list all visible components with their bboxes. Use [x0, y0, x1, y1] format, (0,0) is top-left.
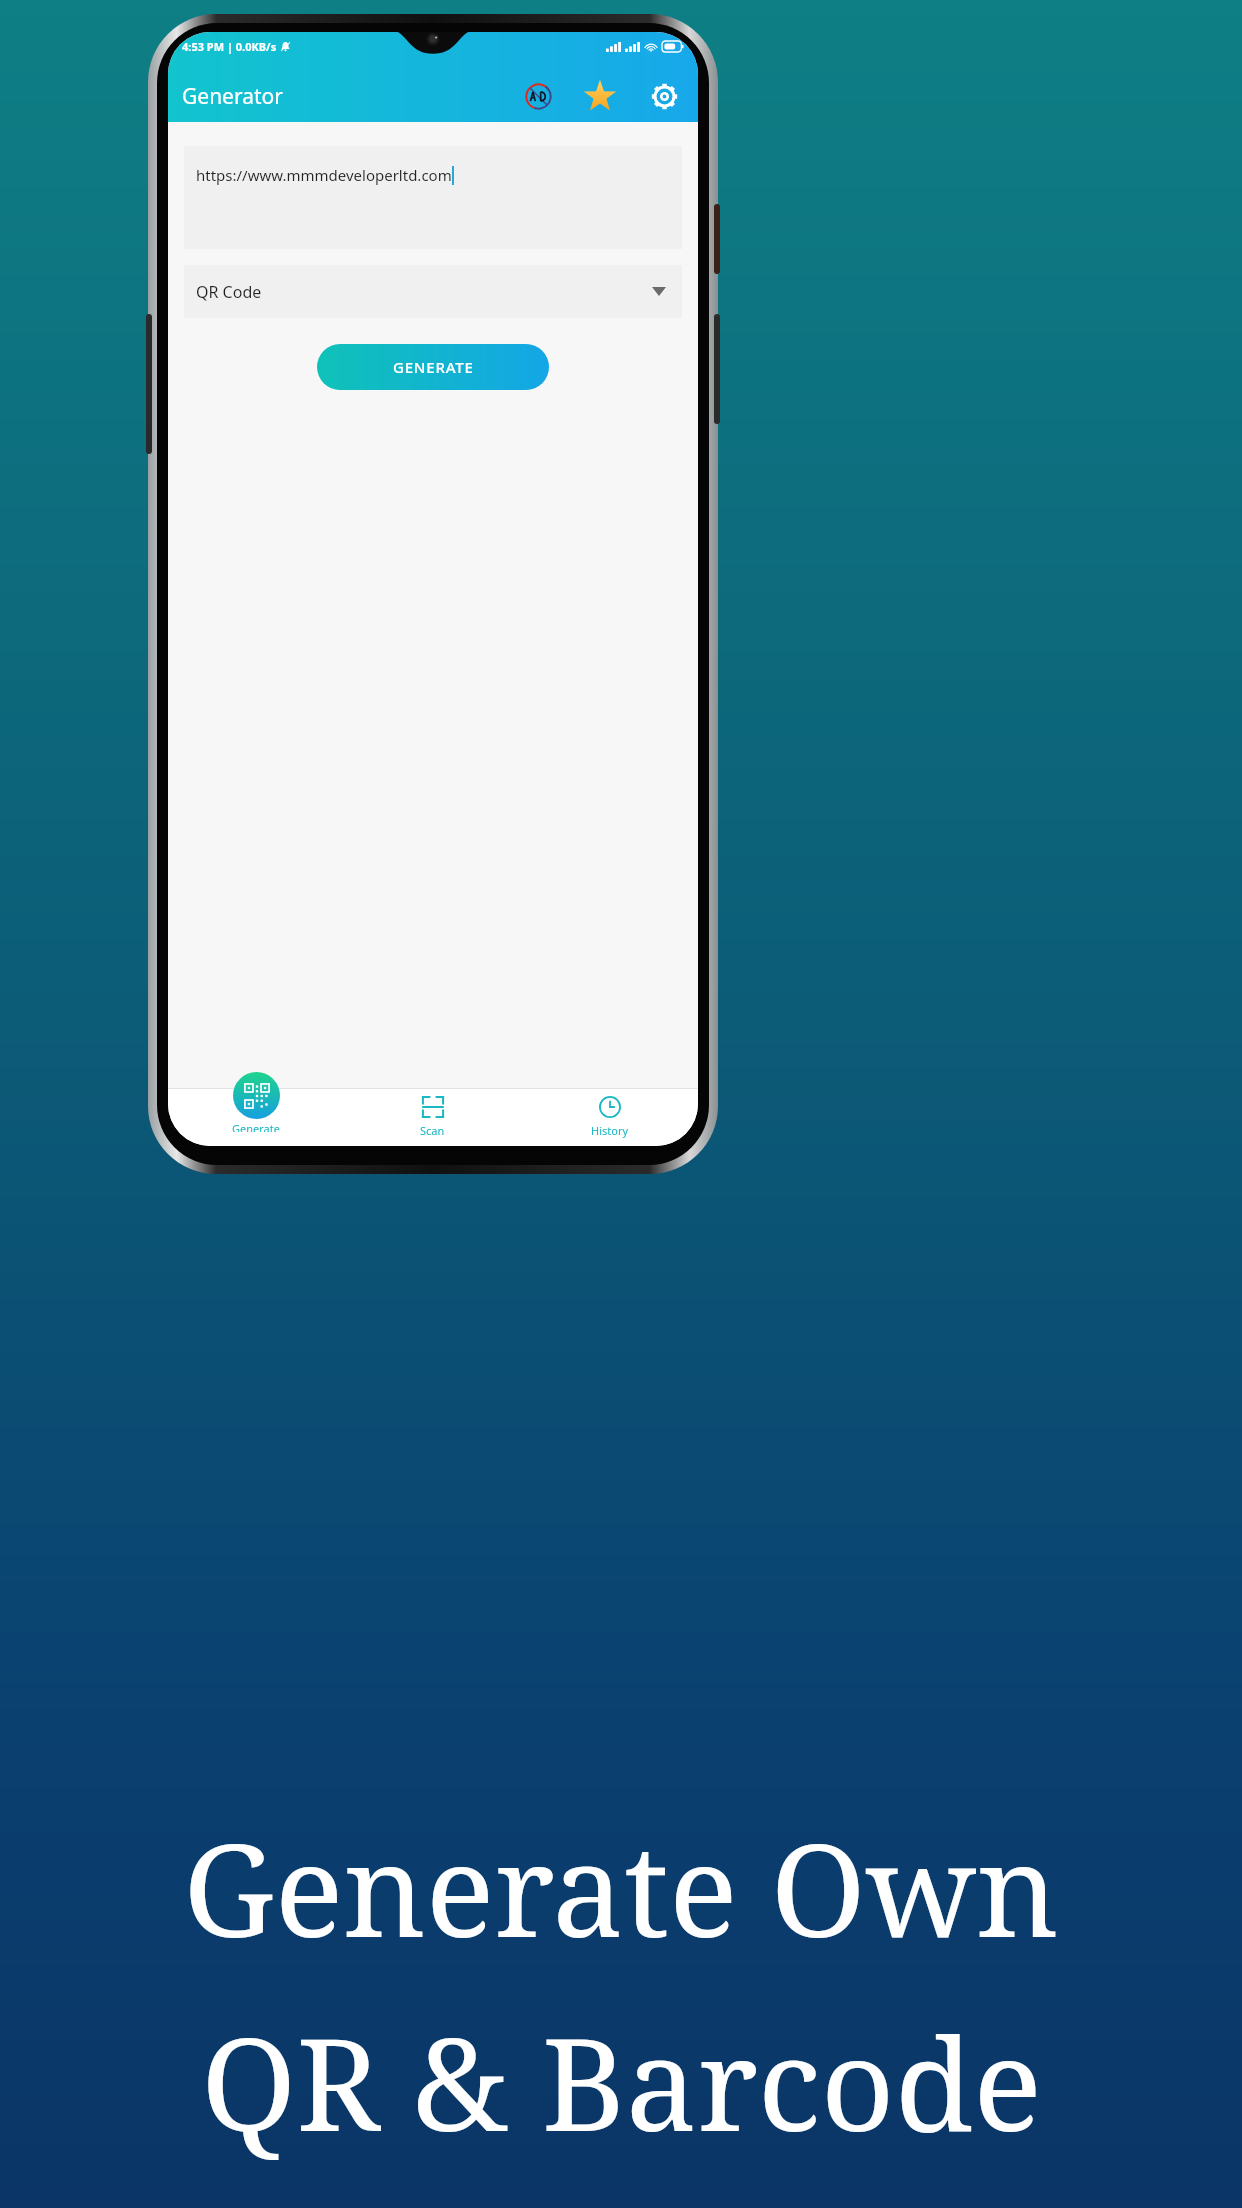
button[interactable]: https://www.mmmdeveloperltd.com — [184, 146, 682, 249]
button[interactable]: QR Code — [184, 265, 682, 318]
staticText: 4:53 PM | 0.0KB/s — [182, 39, 277, 54]
staticText: QR Code — [196, 281, 262, 303]
button[interactable]: Settings — [642, 74, 686, 118]
button[interactable]: Remove ads — [518, 76, 558, 116]
button[interactable]: Rate app — [578, 74, 622, 118]
button[interactable]: Generate — [168, 1088, 344, 1146]
staticText: https://www.mmmdeveloperltd.com — [196, 165, 452, 185]
staticText: Generate — [232, 1121, 280, 1132]
button[interactable]: GENERATE — [317, 344, 549, 390]
button[interactable]: Scan — [344, 1088, 521, 1146]
staticText: GENERATE — [393, 357, 474, 377]
staticText: History — [591, 1123, 629, 1138]
staticText: QR & Barcode — [201, 1994, 1042, 2168]
staticText: Generator — [182, 82, 283, 111]
staticText: Generate Own — [183, 1800, 1059, 1974]
staticText: Scan — [420, 1123, 445, 1138]
button[interactable]: History — [521, 1088, 698, 1146]
